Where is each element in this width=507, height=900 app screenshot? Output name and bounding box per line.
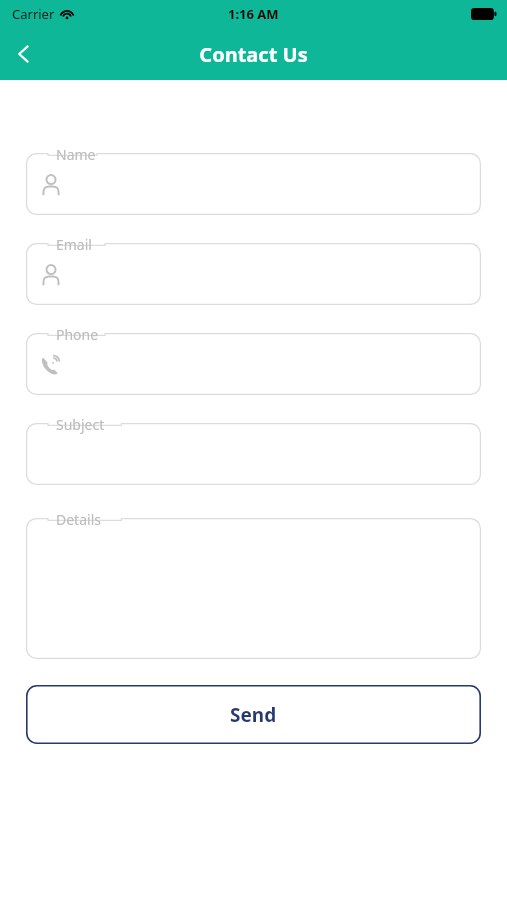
staticText: Name	[56, 145, 96, 164]
staticText: Phone	[56, 325, 99, 344]
staticText: Contact Us	[199, 41, 308, 68]
button[interactable]: Back	[0, 30, 48, 78]
button[interactable]: Name	[26, 153, 481, 215]
staticText: Carrier	[12, 5, 55, 23]
staticText: Details	[56, 510, 101, 529]
staticText: 1:16 AM	[228, 5, 279, 23]
staticText: Email	[56, 235, 92, 254]
button[interactable]: Subject	[26, 423, 481, 485]
button[interactable]: Details	[26, 518, 481, 659]
staticText: Subject	[56, 415, 105, 434]
staticText: Send	[230, 702, 277, 728]
button[interactable]: Email	[26, 243, 481, 305]
button[interactable]: Phone	[26, 333, 481, 395]
button[interactable]: Send	[26, 685, 481, 744]
